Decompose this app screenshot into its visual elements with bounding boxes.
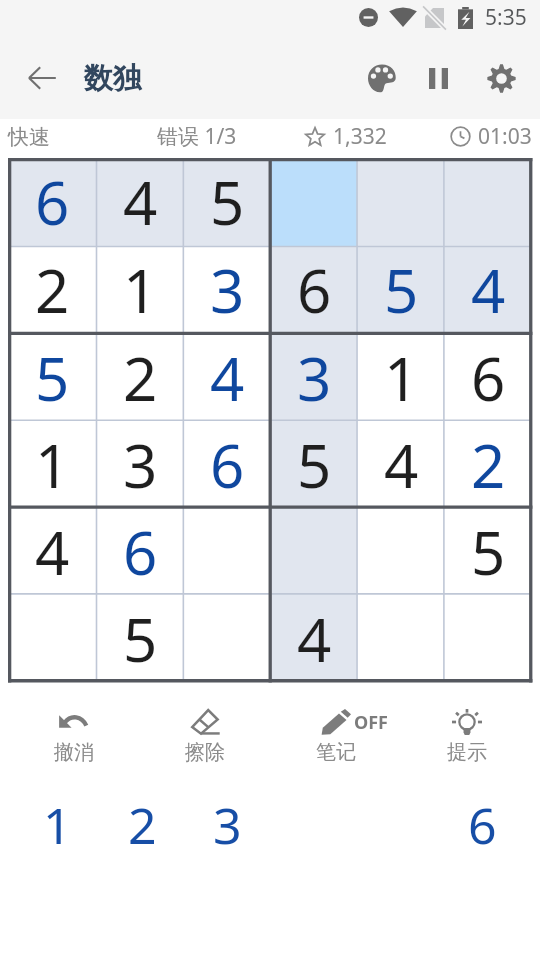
- staticText: 2: [128, 791, 157, 859]
- button[interactable]: Enter 6: [440, 787, 525, 863]
- button[interactable]: Cell row 1 column 1: [8, 158, 96, 246]
- button[interactable]: Cell row 5 column 5: [358, 508, 445, 595]
- button[interactable]: Cell row 2 column 3: [184, 246, 271, 334]
- staticText: 2: [471, 424, 506, 506]
- staticText: 3: [297, 337, 332, 419]
- button[interactable]: Enter 2: [100, 787, 185, 863]
- staticText: 6: [471, 337, 506, 419]
- button[interactable]: 提示: [401, 685, 532, 769]
- staticText: 4: [123, 161, 158, 243]
- button[interactable]: Cell row 2 column 5: [358, 246, 445, 334]
- staticText: 数独: [84, 60, 142, 97]
- button[interactable]: Cell row 1 column 5: [358, 158, 445, 246]
- staticText: 5: [210, 161, 245, 243]
- button[interactable]: 快速: [8, 117, 50, 156]
- button[interactable]: Cell row 5 column 2: [96, 508, 184, 595]
- button[interactable]: Cell row 1 column 2: [96, 158, 184, 246]
- button[interactable]: Cell row 2 column 4: [271, 246, 358, 334]
- button[interactable]: Cell row 4 column 6: [445, 421, 532, 508]
- staticText: 3: [210, 249, 245, 331]
- button[interactable]: 撤消: [8, 685, 139, 769]
- button[interactable]: Cell row 4 column 1: [8, 421, 96, 508]
- button[interactable]: Cell row 4 column 4: [271, 421, 358, 508]
- staticText: 2: [35, 249, 70, 331]
- button[interactable]: Back: [18, 54, 66, 102]
- staticText: 1,332: [333, 122, 387, 151]
- staticText: 5: [35, 337, 70, 419]
- staticText: 撤消: [54, 740, 94, 765]
- staticText: 5: [384, 249, 419, 331]
- button[interactable]: Cell row 3 column 4: [271, 334, 358, 421]
- staticText: 4: [35, 511, 70, 593]
- staticText: 5: [471, 511, 506, 593]
- staticText: 01:03: [478, 122, 532, 151]
- staticText: 错误 1/3: [157, 122, 237, 151]
- staticText: 4: [297, 598, 332, 680]
- staticText: 1: [43, 791, 72, 859]
- staticText: 擦除: [185, 740, 225, 765]
- button[interactable]: OFF: [270, 685, 401, 769]
- button[interactable]: Cell row 1 column 3: [184, 158, 271, 246]
- button[interactable]: Cell row 3 column 3: [184, 334, 271, 421]
- staticText: 6: [297, 249, 332, 331]
- button[interactable]: Cell row 4 column 5: [358, 421, 445, 508]
- staticText: 快速: [8, 124, 50, 150]
- button[interactable]: Cell row 6 column 2: [96, 595, 184, 682]
- button[interactable]: Cell row 6 column 6: [445, 595, 532, 682]
- staticText: 4: [384, 424, 419, 506]
- staticText: 3: [123, 424, 158, 506]
- button[interactable]: 擦除: [139, 685, 270, 769]
- button[interactable]: Cell row 6 column 4: [271, 595, 358, 682]
- staticText: 笔记: [316, 740, 356, 765]
- staticText: 6: [210, 424, 245, 506]
- button[interactable]: Cell row 6 column 3: [184, 595, 271, 682]
- staticText: 1: [123, 249, 158, 331]
- button[interactable]: Theme: [356, 52, 408, 104]
- staticText: 6: [123, 511, 158, 593]
- button[interactable]: Cell row 5 column 1: [8, 508, 96, 595]
- staticText: 6: [468, 791, 497, 859]
- staticText: 1: [35, 424, 70, 506]
- button[interactable]: Cell row 3 column 5: [358, 334, 445, 421]
- staticText: 5:35: [485, 3, 527, 32]
- button[interactable]: Enter 1: [15, 787, 100, 863]
- button[interactable]: Cell row 5 column 6: [445, 508, 532, 595]
- button[interactable]: Pause: [412, 52, 464, 104]
- staticText: 4: [471, 249, 506, 331]
- staticText: 1: [384, 337, 419, 419]
- staticText: OFF: [354, 710, 389, 735]
- staticText: 4: [210, 337, 245, 419]
- button[interactable]: Cell row 5 column 4: [271, 508, 358, 595]
- button[interactable]: Cell row 2 column 1: [8, 246, 96, 334]
- button[interactable]: Cell row 3 column 2: [96, 334, 184, 421]
- button[interactable]: Cell row 3 column 1: [8, 334, 96, 421]
- button[interactable]: Cell row 2 column 6: [445, 246, 532, 334]
- button[interactable]: Cell row 2 column 2: [96, 246, 184, 334]
- button[interactable]: 1,332: [305, 117, 387, 156]
- staticText: 5: [297, 424, 332, 506]
- button[interactable]: Cell row 4 column 3: [184, 421, 271, 508]
- button[interactable]: Cell row 1 column 4: [271, 158, 358, 246]
- button[interactable]: Enter 3: [185, 787, 270, 863]
- staticText: 3: [213, 791, 242, 859]
- button[interactable]: 01:03: [450, 117, 532, 156]
- button[interactable]: Cell row 4 column 2: [96, 421, 184, 508]
- button[interactable]: 错误 1/3: [157, 117, 237, 156]
- button[interactable]: Cell row 6 column 5: [358, 595, 445, 682]
- button[interactable]: Cell row 6 column 1: [8, 595, 96, 682]
- staticText: 5: [123, 598, 158, 680]
- button[interactable]: Settings: [475, 52, 527, 104]
- staticText: 2: [123, 337, 158, 419]
- button[interactable]: Cell row 1 column 6: [445, 158, 532, 246]
- staticText: 6: [35, 161, 70, 243]
- staticText: 提示: [447, 740, 487, 765]
- button[interactable]: Cell row 3 column 6: [445, 334, 532, 421]
- button[interactable]: Cell row 5 column 3: [184, 508, 271, 595]
